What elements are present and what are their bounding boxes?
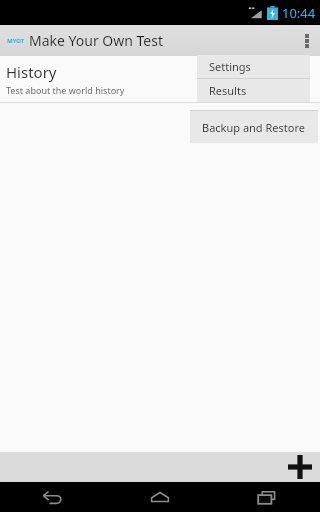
staticText: Results bbox=[209, 83, 247, 98]
staticText: History bbox=[6, 62, 57, 82]
button[interactable]: Results bbox=[197, 79, 310, 102]
staticText: Test about the world history bbox=[6, 84, 125, 96]
staticText: Backup and Restore bbox=[202, 120, 305, 135]
staticText: Settings bbox=[209, 59, 251, 74]
button[interactable]: More options bbox=[294, 25, 320, 56]
button[interactable]: Home bbox=[106, 482, 213, 512]
button[interactable]: History bbox=[0, 56, 320, 102]
button[interactable]: Settings bbox=[197, 55, 310, 78]
button[interactable]: Recent apps bbox=[213, 482, 320, 512]
button[interactable]: Backup and Restore bbox=[190, 111, 318, 143]
staticText: MYOT bbox=[7, 37, 25, 45]
staticText: Make Your Own Test bbox=[29, 31, 164, 50]
button[interactable]: Add test bbox=[285, 452, 315, 482]
staticText: 10:44 bbox=[282, 4, 316, 22]
button[interactable]: Back bbox=[0, 482, 106, 512]
